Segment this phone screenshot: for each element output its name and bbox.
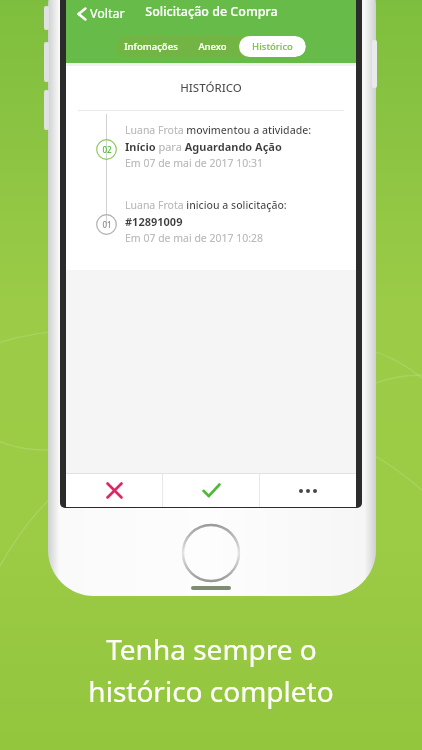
staticText: Luana Frota movimentou a atividade: [125, 123, 312, 137]
staticText: Anexo [198, 40, 227, 53]
staticText: 02 [102, 144, 112, 155]
button[interactable]: Histórico [239, 36, 306, 57]
staticText: Infomações [124, 40, 178, 53]
staticText: Em 07 de mai de 2017 10:31 [125, 156, 264, 170]
staticText: Em 07 de mai de 2017 10:28 [125, 231, 264, 245]
button[interactable]: Aprovar [163, 474, 259, 507]
staticText: #12891009 [125, 214, 183, 229]
staticText: Solicitação de Compra [145, 3, 278, 20]
staticText: Histórico [252, 40, 293, 53]
staticText: Tenha sempre o [106, 630, 317, 668]
staticText: Voltar [90, 5, 125, 22]
staticText: histórico completo [88, 672, 334, 710]
button[interactable]: Reprovar [66, 474, 162, 507]
staticText: HISTÓRICO [180, 80, 242, 96]
staticText: Início para Aguardando Ação [125, 139, 282, 154]
button[interactable]: Infomações [116, 36, 185, 57]
button[interactable]: Voltar [72, 2, 129, 25]
button[interactable]: Mais opções [260, 474, 356, 507]
staticText: Luana Frota iniciou a solicitação: [125, 198, 287, 212]
staticText: 01 [102, 219, 112, 230]
button[interactable]: Anexo [185, 36, 239, 57]
